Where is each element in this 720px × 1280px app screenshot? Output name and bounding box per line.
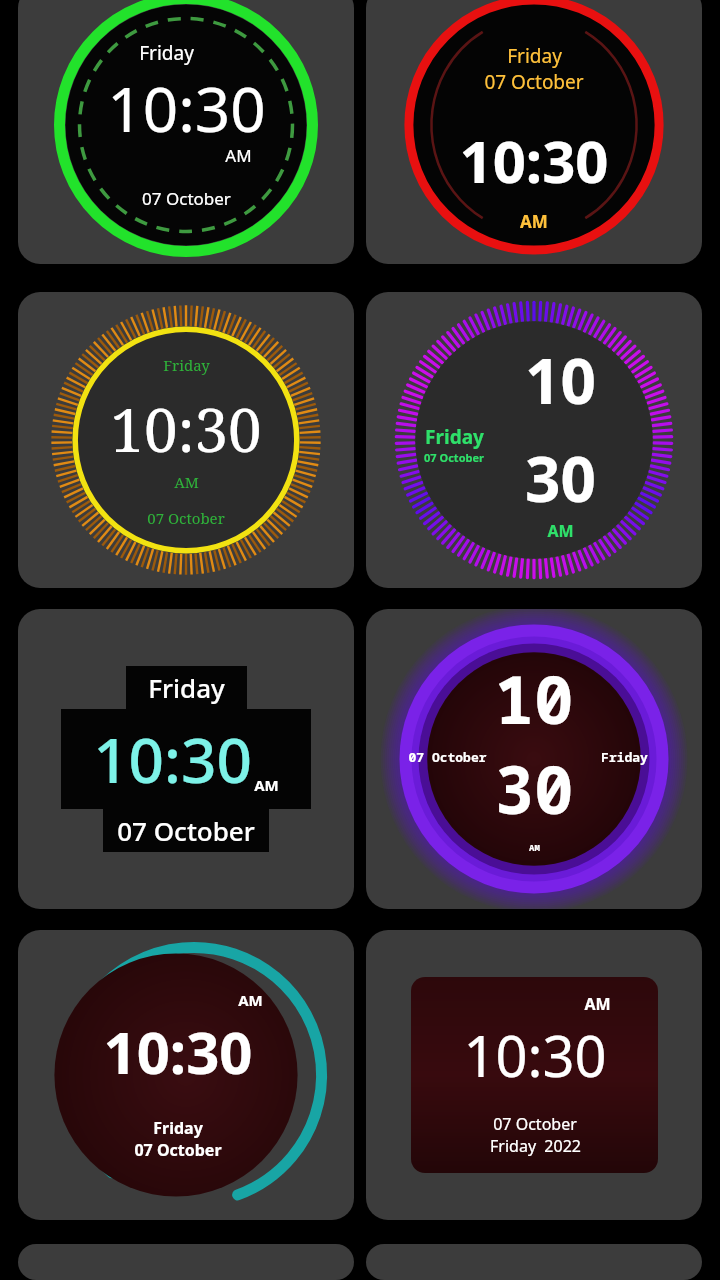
staticText: 07 October [408, 748, 487, 766]
button[interactable]: 10 [366, 292, 702, 588]
staticText: 10:30 [103, 1012, 253, 1091]
staticText: Friday [153, 1117, 203, 1139]
button[interactable]: AM [366, 930, 702, 1220]
staticText: 30 [494, 743, 574, 833]
staticText: 07 October [493, 1113, 577, 1135]
button[interactable]: Friday [366, 0, 702, 264]
staticText: 07 October [134, 1139, 222, 1161]
button[interactable]: 10 [366, 609, 702, 909]
staticText: AM [254, 775, 279, 795]
staticText: AM [584, 993, 611, 1015]
button[interactable]: AM [18, 930, 354, 1220]
staticText: 10:30 [107, 66, 266, 150]
staticText: AM [225, 144, 252, 167]
staticText: Friday [163, 355, 210, 375]
staticText: Friday [139, 40, 194, 66]
staticText: Friday [601, 748, 648, 766]
staticText: AM [529, 841, 540, 853]
staticText: 10:30 [463, 1017, 607, 1093]
staticText: 10:30 [110, 388, 262, 470]
staticText: AM [238, 990, 263, 1010]
button[interactable]: Friday [18, 0, 354, 264]
staticText: 10:30 [459, 121, 609, 200]
staticText: 07 October [117, 813, 255, 848]
staticText: 10 [494, 653, 574, 743]
staticText: AM [520, 210, 548, 233]
staticText: 30 [525, 436, 596, 520]
button[interactable]: Watch face preview [366, 1244, 702, 1280]
button[interactable]: Watch face preview [18, 1244, 354, 1280]
staticText: 07 October [424, 450, 484, 465]
staticText: Friday [148, 670, 225, 705]
staticText: AM [547, 520, 574, 542]
button[interactable]: Friday [18, 609, 354, 909]
staticText: 10 [525, 338, 596, 422]
staticText: Friday [507, 43, 562, 69]
staticText: 07 October [147, 508, 225, 528]
staticText: AM [174, 472, 199, 492]
button[interactable]: Friday [18, 292, 354, 588]
staticText: Friday 2022 [490, 1135, 581, 1157]
staticText: Friday [425, 424, 484, 450]
staticText: 07 October [142, 187, 231, 210]
staticText: 07 October [484, 69, 584, 95]
staticText: 10:30 [93, 717, 252, 801]
